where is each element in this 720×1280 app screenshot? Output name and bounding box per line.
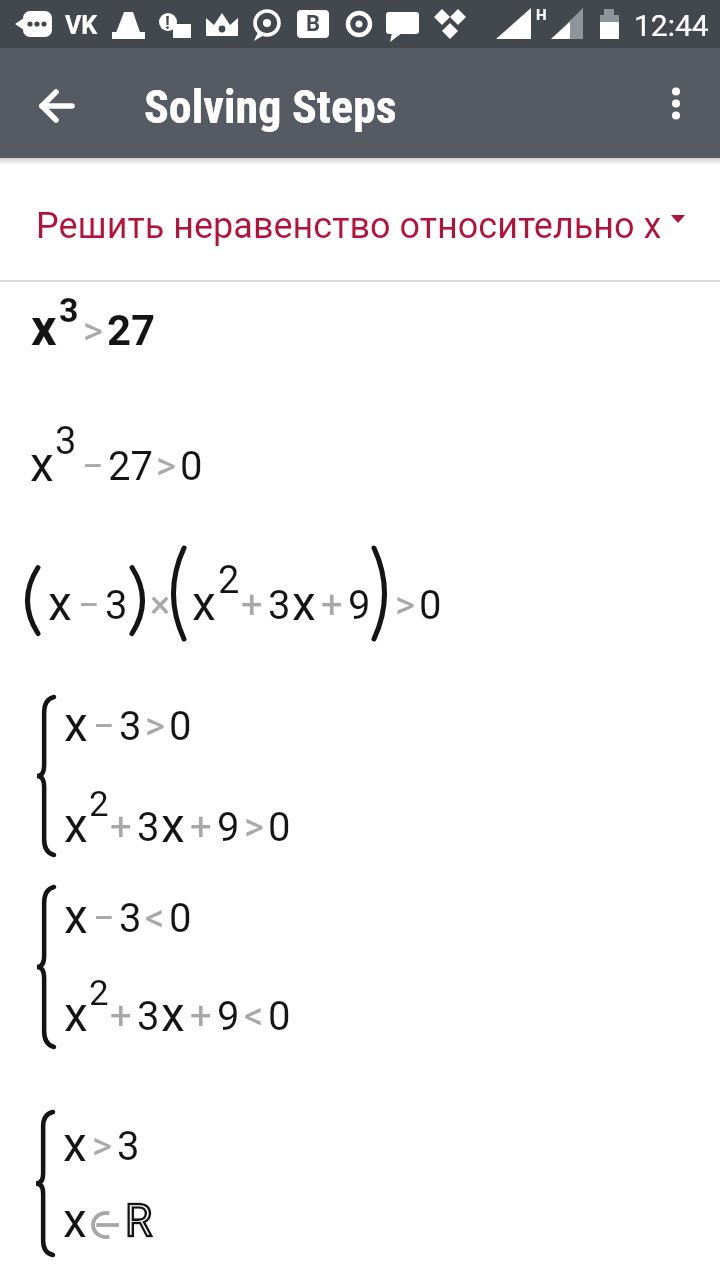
button[interactable]	[656, 78, 700, 122]
button[interactable]	[30, 79, 84, 133]
button[interactable]	[0, 165, 720, 281]
